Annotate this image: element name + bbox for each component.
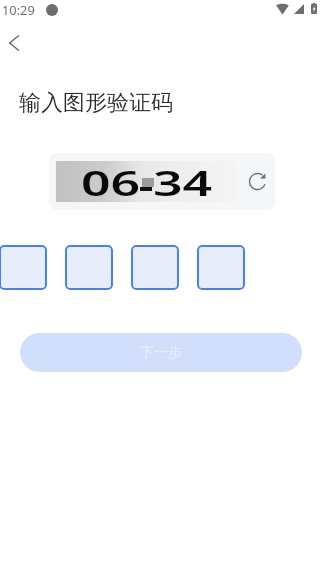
button[interactable]: 下一步	[20, 333, 302, 372]
staticText: 06	[81, 159, 141, 200]
button[interactable]: Back	[0, 26, 31, 60]
button[interactable]	[197, 245, 245, 290]
button[interactable]	[0, 245, 47, 290]
staticText: 34	[153, 159, 213, 200]
button[interactable]: Refresh captcha	[244, 168, 270, 194]
staticText: 输入图形验证码	[19, 89, 173, 117]
staticText: 10:29	[2, 1, 35, 18]
button[interactable]: Captcha image	[56, 161, 238, 202]
staticText: 下一步	[140, 344, 182, 362]
button[interactable]	[65, 245, 113, 290]
button[interactable]	[131, 245, 179, 290]
